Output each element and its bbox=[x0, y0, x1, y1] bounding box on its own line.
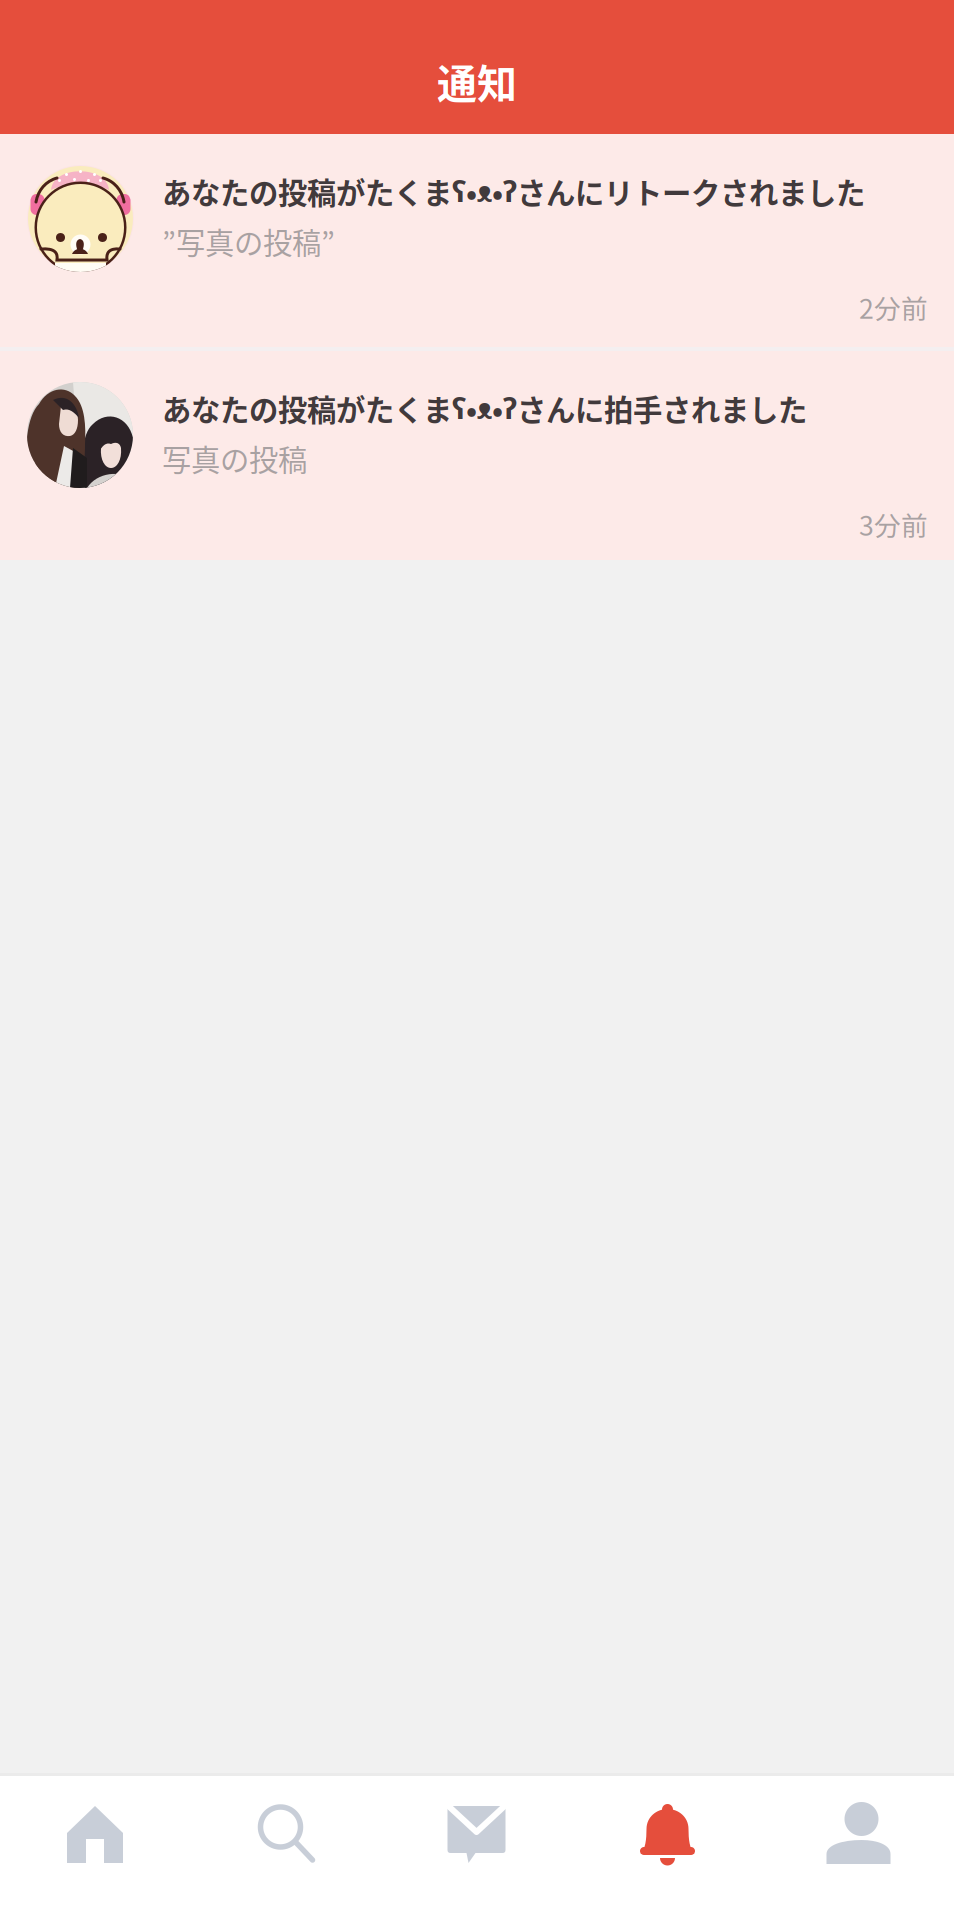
button[interactable]: プロフィール bbox=[763, 1776, 954, 1920]
button[interactable]: あなたの投稿がたくまʕ•ᴥ•ʔさんにリトークされました bbox=[0, 134, 954, 347]
staticText: ”写真の投稿” bbox=[162, 220, 335, 262]
button[interactable]: 通知 bbox=[572, 1776, 763, 1920]
button[interactable]: ホーム bbox=[0, 1776, 190, 1920]
staticText: あなたの投稿がたくまʕ•ᴥ•ʔさんにリトークされました bbox=[162, 170, 865, 212]
staticText: あなたの投稿がたくまʕ•ᴥ•ʔさんに拍手されました bbox=[162, 387, 807, 429]
staticText: 通知 bbox=[437, 52, 517, 110]
staticText: 写真の投稿 bbox=[162, 437, 307, 479]
staticText: 3分前 bbox=[859, 505, 928, 543]
button[interactable]: あなたの投稿がたくまʕ•ᴥ•ʔさんに拍手されました bbox=[0, 351, 954, 560]
button[interactable]: メッセージ bbox=[381, 1776, 572, 1920]
staticText: 2分前 bbox=[859, 288, 928, 326]
button[interactable]: 検索 bbox=[190, 1776, 381, 1920]
